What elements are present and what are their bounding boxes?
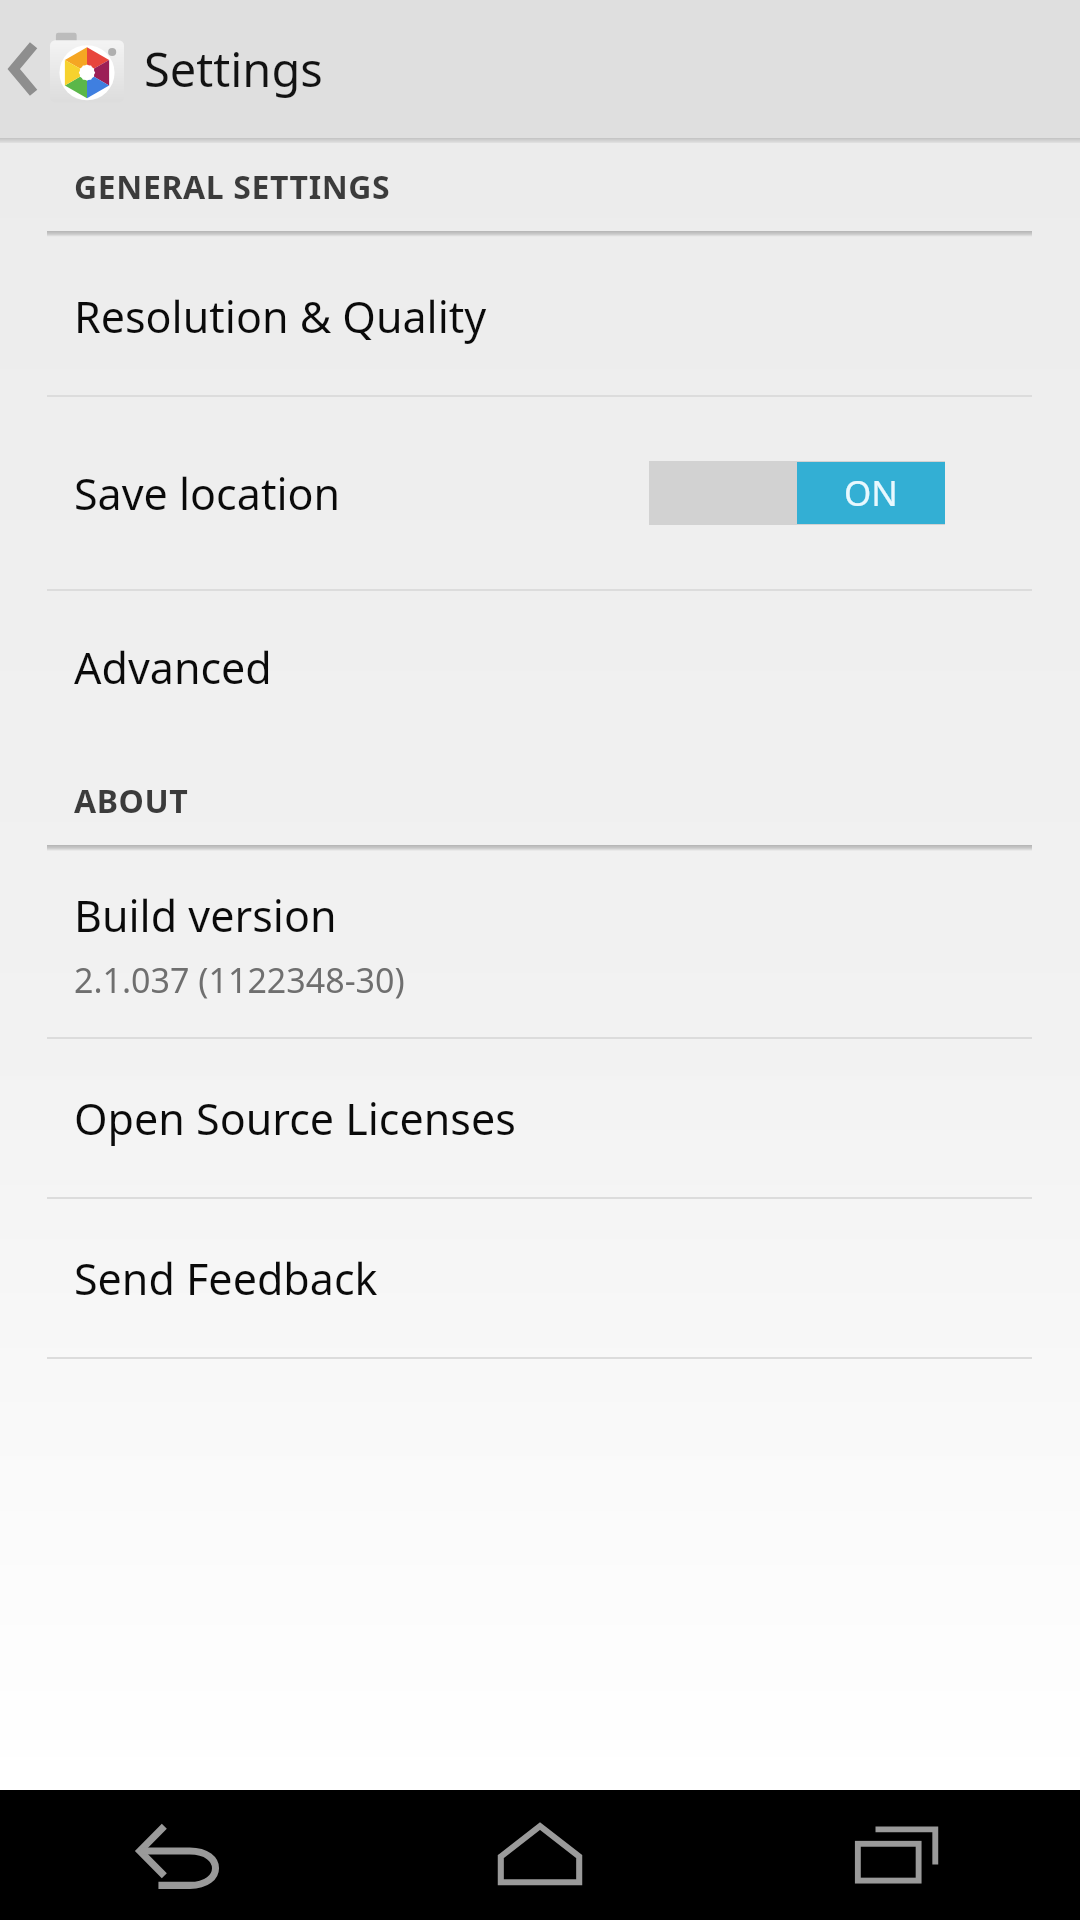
- staticText: Open Source Licenses: [74, 1089, 516, 1148]
- button[interactable]: Save location, on: [649, 461, 945, 525]
- button[interactable]: Navigate up: [8, 11, 124, 127]
- staticText: GENERAL SETTINGS: [74, 165, 391, 209]
- staticText: Save location: [74, 464, 649, 523]
- button[interactable]: Home: [360, 1790, 720, 1920]
- button[interactable]: Advanced: [0, 591, 1080, 743]
- button[interactable]: Build version: [0, 851, 1080, 1037]
- staticText: Advanced: [74, 638, 272, 697]
- staticText: ON: [844, 469, 898, 517]
- staticText: 2.1.037 (1122348-30): [74, 957, 405, 1003]
- staticText: Send Feedback: [74, 1249, 378, 1308]
- staticText: Settings: [144, 37, 323, 101]
- button[interactable]: Save location: [0, 397, 1080, 589]
- staticText: Resolution & Quality: [74, 287, 487, 346]
- staticText: ABOUT: [74, 779, 189, 823]
- button[interactable]: Recent apps: [720, 1790, 1080, 1920]
- button[interactable]: Send Feedback: [0, 1199, 1080, 1357]
- button[interactable]: Resolution & Quality: [0, 237, 1080, 395]
- button[interactable]: Open Source Licenses: [0, 1039, 1080, 1197]
- staticText: Build version: [74, 886, 337, 945]
- button[interactable]: Back: [0, 1790, 360, 1920]
